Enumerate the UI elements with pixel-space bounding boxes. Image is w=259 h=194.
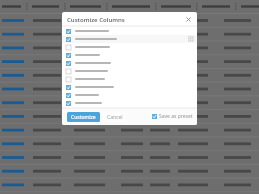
button[interactable] <box>62 83 197 91</box>
button[interactable] <box>62 51 197 59</box>
staticText: Customize <box>71 114 96 121</box>
other: Drag to reorder <box>188 36 194 42</box>
button[interactable] <box>62 43 197 51</box>
button[interactable]: Close dialog <box>184 15 193 24</box>
button[interactable] <box>62 67 197 75</box>
button[interactable] <box>62 75 197 83</box>
staticText: Cancel <box>107 114 123 121</box>
button[interactable] <box>62 59 197 67</box>
staticText: Customize Columns <box>67 16 125 24</box>
button[interactable] <box>62 91 197 99</box>
button[interactable] <box>62 99 197 107</box>
button[interactable] <box>62 27 197 35</box>
button[interactable]: Save as preset <box>152 113 193 120</box>
button[interactable]: Customize <box>67 112 100 122</box>
button[interactable]: Cancel <box>103 112 126 122</box>
button[interactable]: Drag to reorder <box>62 35 197 43</box>
staticText: Save as preset <box>159 113 193 120</box>
